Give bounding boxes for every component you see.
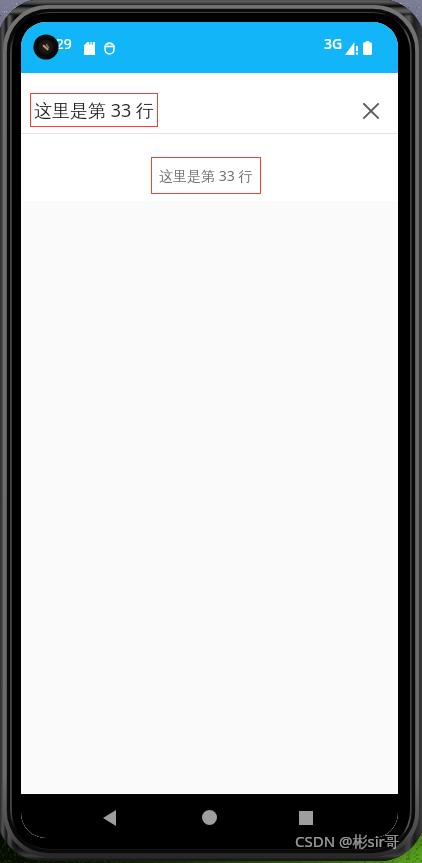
- button[interactable]: Close: [352, 92, 389, 129]
- button[interactable]: Home: [183, 797, 235, 837]
- staticText: 这里是第 33 行: [159, 166, 253, 185]
- staticText: 这里是第 33 行: [34, 98, 154, 123]
- button[interactable]: Recents: [280, 798, 332, 838]
- button[interactable]: 这里是第 33 行: [30, 93, 158, 127]
- staticText: 10:29: [36, 34, 72, 53]
- button[interactable]: Back: [83, 798, 135, 838]
- button[interactable]: 这里是第 33 行: [151, 157, 261, 194]
- staticText: CSDN @彬sir哥: [295, 831, 400, 851]
- staticText: 3G: [324, 34, 343, 53]
